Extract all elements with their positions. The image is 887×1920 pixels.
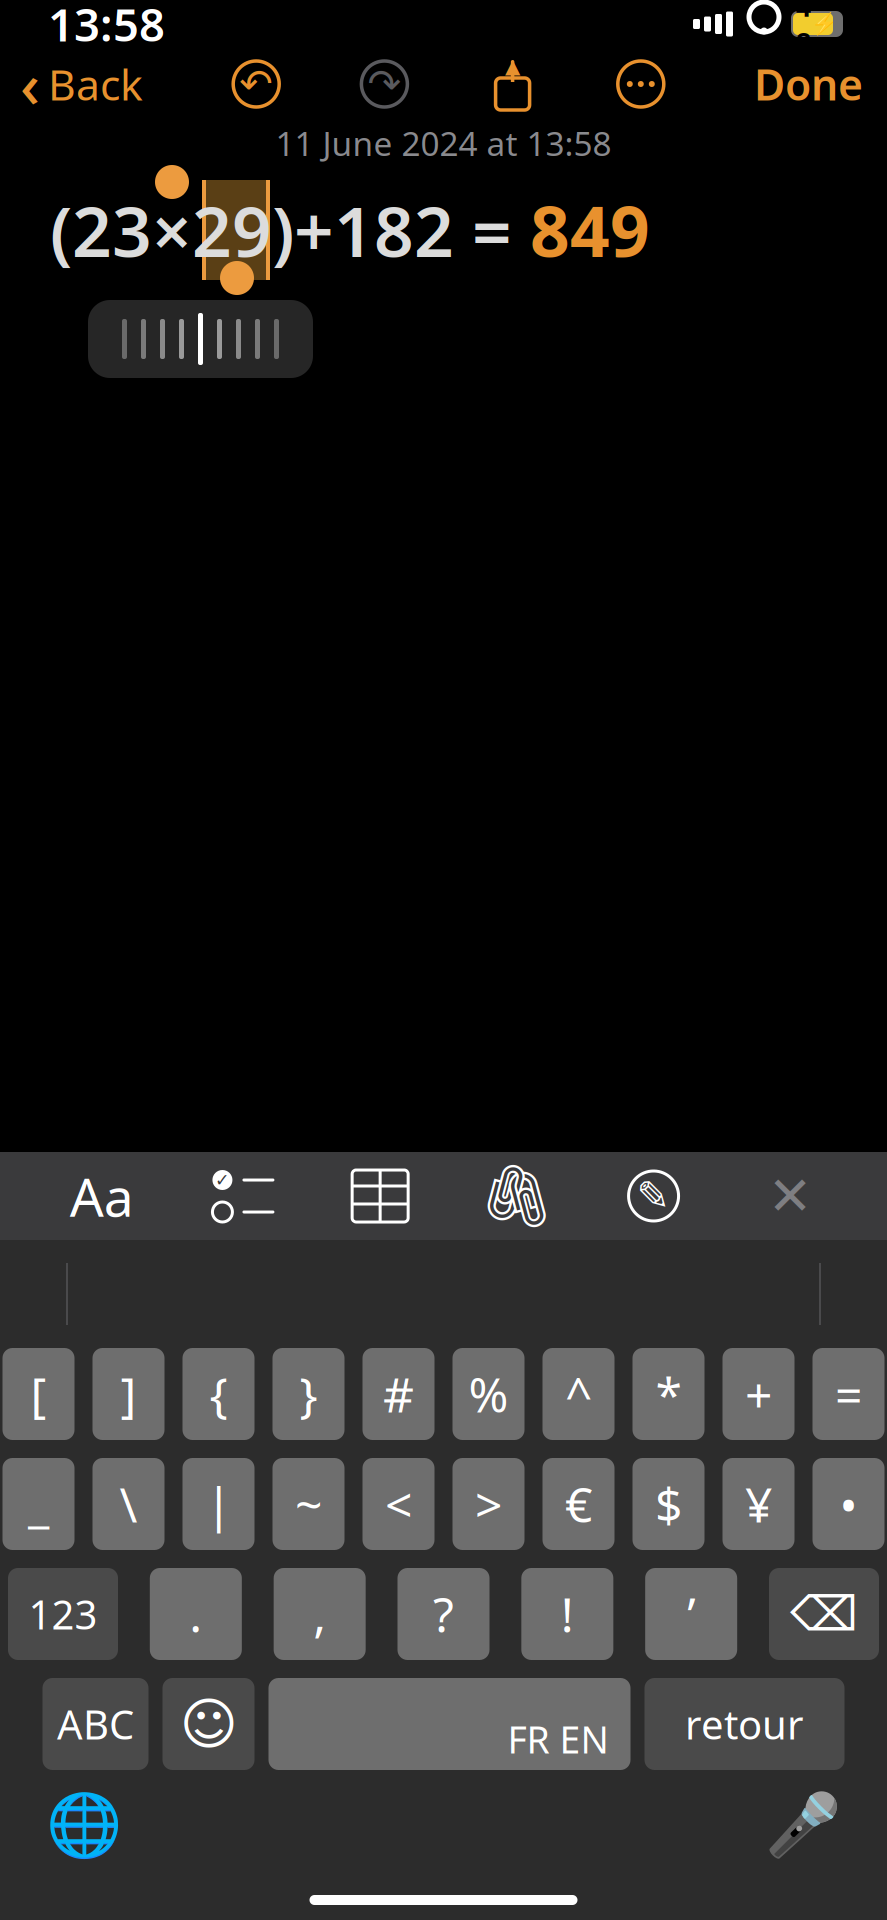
staticText: , <box>313 1582 326 1646</box>
staticText: ⚡ <box>811 12 838 36</box>
button[interactable]: ! <box>521 1568 613 1660</box>
button[interactable]: , <box>274 1568 366 1660</box>
button[interactable]: _ <box>2 1458 74 1550</box>
button[interactable]: ABC <box>42 1678 148 1770</box>
staticText: Back <box>48 56 143 112</box>
staticText: ✎ <box>637 1173 671 1219</box>
staticText: FR EN <box>507 1714 608 1764</box>
button[interactable]: Dictate <box>753 1777 853 1873</box>
staticText: ✓ <box>215 1170 230 1190</box>
staticText: { <box>209 1362 227 1426</box>
button[interactable]: # <box>362 1348 434 1440</box>
staticText: Done <box>754 56 863 112</box>
staticText: 48 <box>796 0 811 59</box>
button[interactable]: . <box>150 1568 242 1660</box>
staticText: retour <box>685 1697 804 1750</box>
staticText: ‹ <box>20 43 40 125</box>
button[interactable]: retour <box>644 1678 844 1770</box>
staticText: ’ <box>687 1582 695 1646</box>
staticText: . <box>189 1582 202 1646</box>
button[interactable]: { <box>182 1348 254 1440</box>
button[interactable]: * <box>632 1348 704 1440</box>
button[interactable]: \ <box>92 1458 164 1550</box>
button[interactable]: ] <box>92 1348 164 1440</box>
staticText: 🎤 <box>765 1790 841 1860</box>
button[interactable]: Share <box>488 56 538 112</box>
button[interactable]: More <box>616 59 666 109</box>
staticText: ? <box>433 1582 454 1646</box>
button[interactable]: $ <box>632 1458 704 1550</box>
button[interactable]: ^ <box>542 1348 614 1440</box>
button[interactable]: ~ <box>272 1458 344 1550</box>
staticText: < <box>385 1472 412 1536</box>
staticText: Aa <box>70 1161 134 1231</box>
staticText: ] <box>120 1362 136 1426</box>
button[interactable]: Table <box>340 1152 420 1240</box>
staticText: ↷ <box>367 61 401 107</box>
staticText: 123 <box>28 1587 97 1640</box>
button[interactable]: Attach <box>477 1152 557 1240</box>
button[interactable]: | <box>182 1458 254 1550</box>
button[interactable]: > <box>452 1458 524 1550</box>
staticText: 13:58 <box>48 0 165 54</box>
staticText: 🖇 <box>478 1161 556 1231</box>
staticText: ⌫ <box>790 1587 858 1641</box>
button[interactable]: 123 <box>8 1568 118 1660</box>
button[interactable]: Done <box>744 54 887 114</box>
staticText: € <box>565 1472 592 1536</box>
staticText: = <box>454 184 530 276</box>
staticText: # <box>383 1362 414 1426</box>
staticText: = <box>835 1362 862 1426</box>
button[interactable]: ? <box>397 1568 489 1660</box>
staticText: $ <box>655 1472 682 1536</box>
button[interactable]: Change keyboard <box>34 1777 134 1873</box>
button[interactable]: < <box>362 1458 434 1550</box>
staticText: % <box>468 1362 508 1426</box>
button[interactable]: Checklist <box>203 1152 283 1240</box>
staticText: ! <box>561 1582 574 1646</box>
button[interactable]: Markup <box>614 1152 694 1240</box>
staticText: | <box>205 1472 231 1536</box>
staticText: ↶ <box>239 61 273 107</box>
staticText: ✕ <box>768 1166 813 1226</box>
staticText: ☺ <box>179 1692 237 1756</box>
staticText: * <box>655 1362 681 1426</box>
staticText: } <box>299 1362 317 1426</box>
button[interactable]: } <box>272 1348 344 1440</box>
button[interactable]: Close keyboard <box>750 1152 830 1240</box>
button[interactable]: ’ <box>645 1568 737 1660</box>
staticText: > <box>475 1472 502 1536</box>
button[interactable]: + <box>722 1348 794 1440</box>
button[interactable]: = <box>812 1348 884 1440</box>
button[interactable]: Redo <box>359 59 409 109</box>
button[interactable]: ‹ <box>0 54 153 114</box>
staticText: [ <box>30 1362 46 1426</box>
staticText: \ <box>119 1472 137 1536</box>
staticText: ^ <box>565 1362 592 1426</box>
staticText: + <box>745 1362 772 1426</box>
staticText: ▲ <box>505 55 520 77</box>
staticText: (23×29)+182 <box>50 184 454 276</box>
staticText: ¥ <box>745 1472 772 1536</box>
button[interactable]: • <box>812 1458 884 1550</box>
button[interactable]: Emoji <box>162 1678 254 1770</box>
staticText: ABC <box>57 1697 134 1750</box>
button[interactable]: Text format <box>57 1152 147 1240</box>
staticText: 849 <box>530 184 650 276</box>
staticText: ~ <box>295 1472 322 1536</box>
staticText: 🌐 <box>46 1790 122 1860</box>
button[interactable]: € <box>542 1458 614 1550</box>
button[interactable]: % <box>452 1348 524 1440</box>
button[interactable]: Space <box>268 1678 630 1770</box>
button[interactable]: [ <box>2 1348 74 1440</box>
staticText: _ <box>28 1472 49 1536</box>
button[interactable]: Delete <box>769 1568 879 1660</box>
button[interactable]: ¥ <box>722 1458 794 1550</box>
staticText: 11 June 2024 at 13:58 <box>275 121 611 165</box>
button[interactable]: Undo <box>231 59 281 109</box>
staticText: • <box>839 1472 857 1536</box>
